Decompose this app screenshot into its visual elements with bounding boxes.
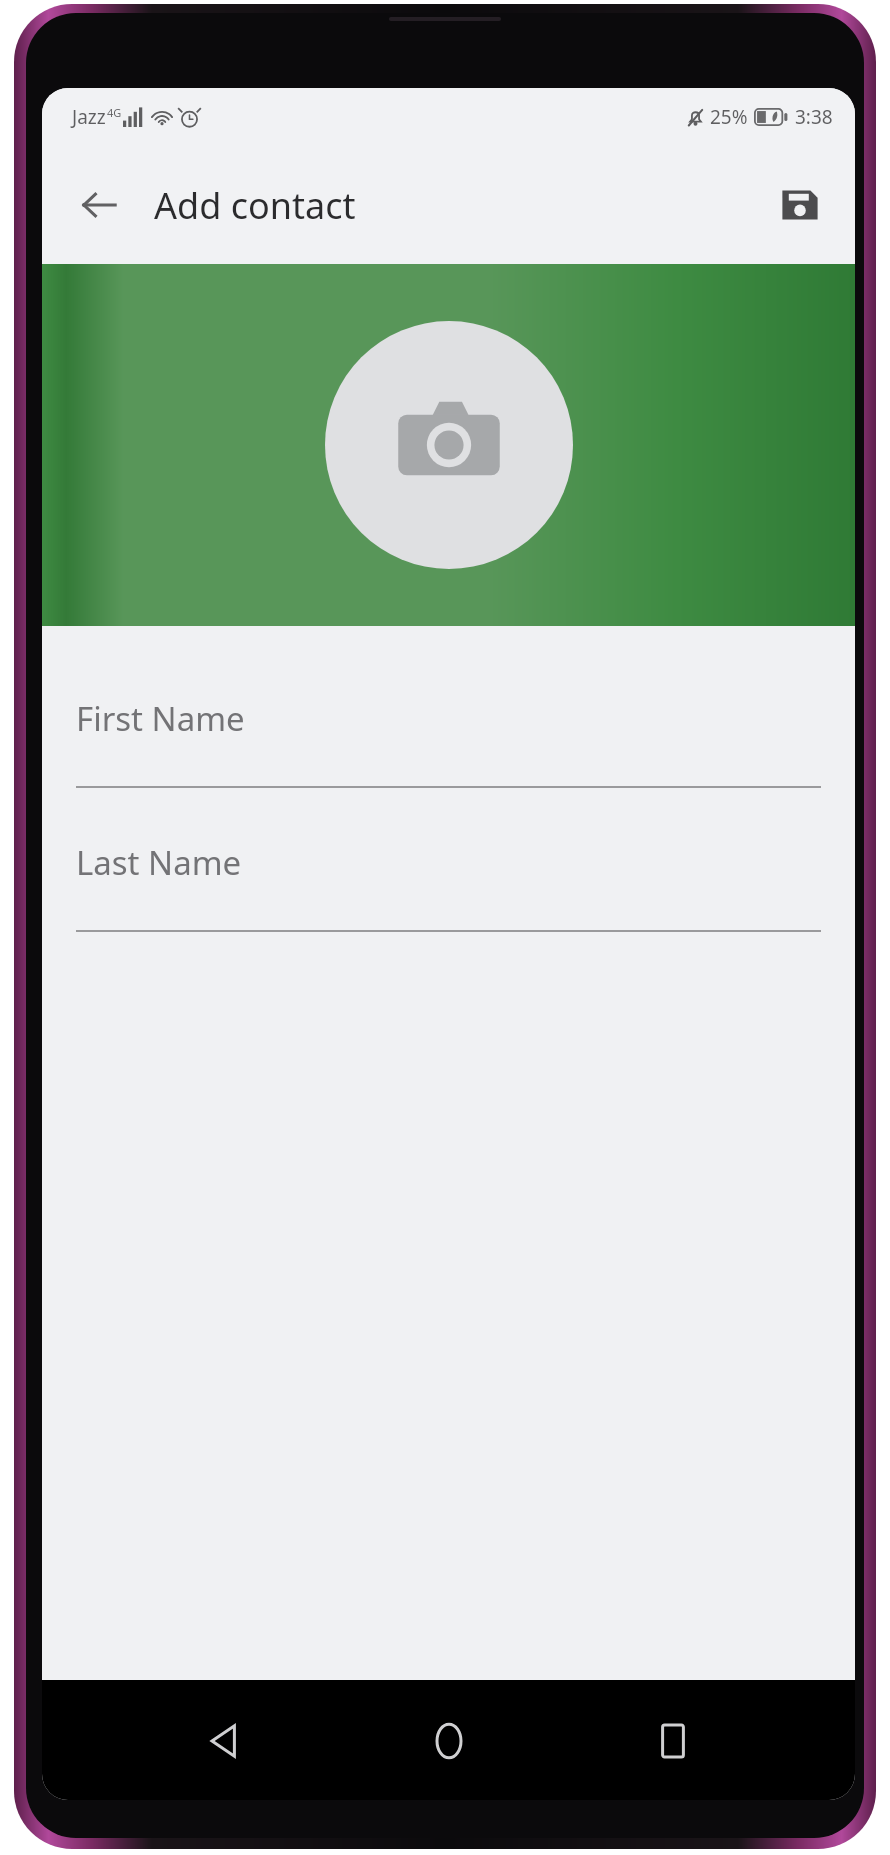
button[interactable]: Back (70, 176, 128, 234)
staticText: 25% (710, 104, 748, 130)
staticText: 4G (107, 105, 122, 120)
staticText: 3:38 (795, 104, 833, 130)
button[interactable]: Add photo (325, 321, 573, 569)
staticText: Jazz (72, 104, 106, 130)
button[interactable]: Home (406, 1698, 492, 1784)
staticText: Add contact (154, 181, 356, 230)
button[interactable]: First Name (76, 682, 821, 788)
button[interactable]: Back (181, 1698, 267, 1784)
staticText: Last Name (76, 840, 242, 885)
staticText: First Name (76, 696, 245, 741)
button[interactable]: Recents (630, 1698, 716, 1784)
button[interactable]: Save (767, 172, 833, 238)
button[interactable]: Last Name (76, 826, 821, 932)
